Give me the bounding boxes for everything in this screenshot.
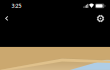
staticText: 3:25 (11, 2, 21, 9)
button[interactable]: Back (0, 10, 15, 26)
button[interactable]: Settings (92, 10, 108, 26)
